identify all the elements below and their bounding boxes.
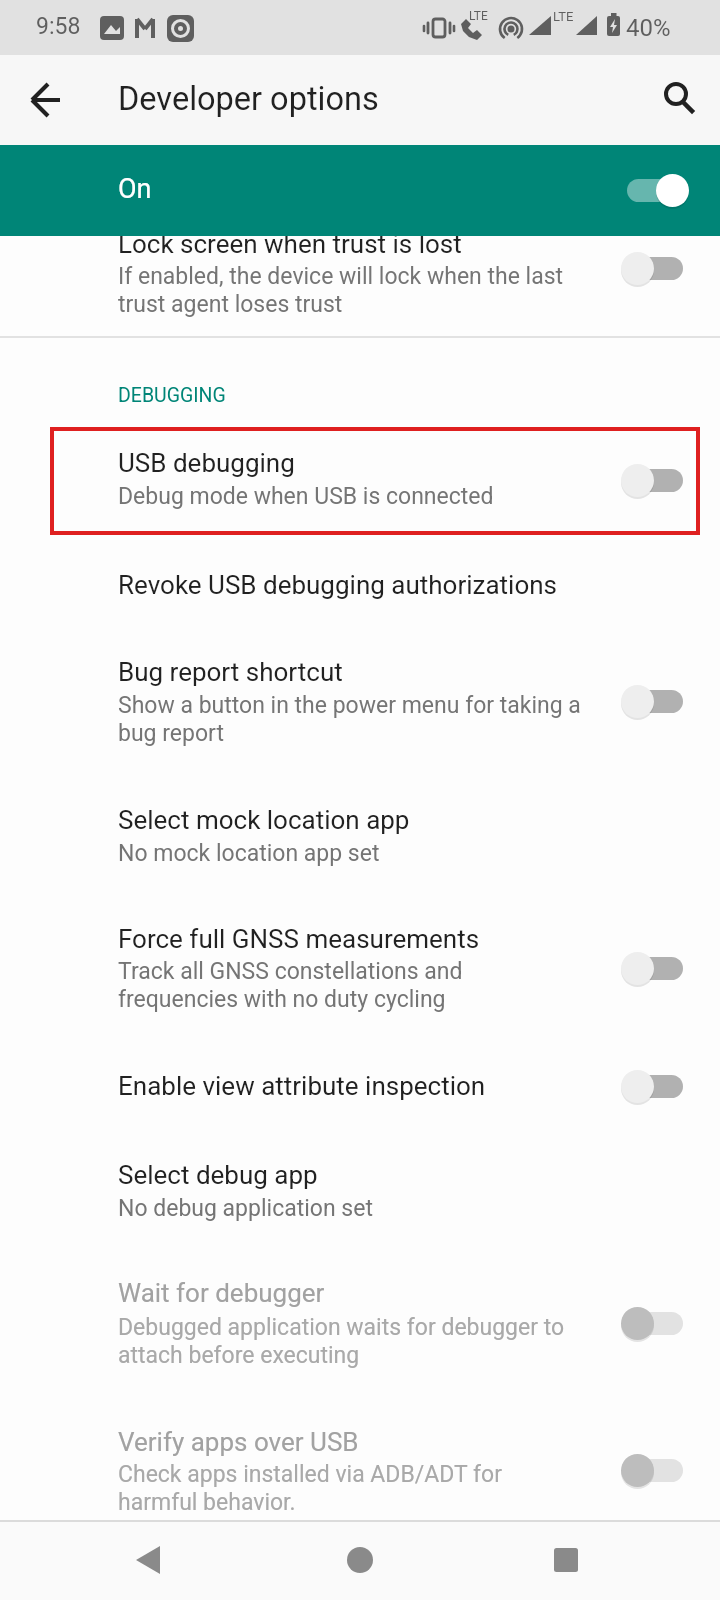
staticText: Debugged application waits for debugger … <box>118 1314 565 1368</box>
button[interactable] <box>656 80 696 120</box>
button[interactable] <box>621 951 689 985</box>
staticText: LTE <box>469 9 488 23</box>
button[interactable] <box>621 463 689 497</box>
button[interactable]: Select mock location app <box>118 805 410 835</box>
button[interactable]: On <box>0 145 720 236</box>
staticText: No mock location app set <box>118 840 380 867</box>
staticText: DEBUGGING <box>118 384 226 407</box>
button[interactable] <box>128 1540 168 1580</box>
staticText: Bug report shortcut <box>118 657 343 687</box>
button[interactable] <box>621 684 689 718</box>
button[interactable] <box>621 1069 689 1103</box>
staticText: Track all GNSS constellations and freque… <box>118 958 463 1012</box>
staticText: On <box>118 173 152 205</box>
button[interactable] <box>621 1306 689 1340</box>
staticText: Show a button in the power menu for taki… <box>118 692 581 746</box>
staticText: Wait for debugger <box>118 1278 325 1308</box>
staticText: Force full GNSS measurements <box>118 924 480 954</box>
button[interactable] <box>546 1540 586 1580</box>
staticText: No debug application set <box>118 1195 373 1222</box>
staticText: Developer options <box>118 80 379 118</box>
staticText: Select debug app <box>118 1160 318 1190</box>
staticText: LTE <box>553 9 574 24</box>
staticText: Select mock location app <box>118 805 410 835</box>
button[interactable] <box>621 1453 689 1487</box>
staticText: Lock screen when trust is lost <box>118 229 462 259</box>
staticText: 40% <box>626 14 671 42</box>
button[interactable] <box>621 173 689 207</box>
staticText: Debug mode when USB is connected <box>118 483 494 510</box>
staticText: Verify apps over USB <box>118 1427 359 1457</box>
staticText: 9:58 <box>36 13 81 40</box>
staticText: USB debugging <box>118 448 295 478</box>
staticText: Check apps installed via ADB/ADT for har… <box>118 1461 502 1515</box>
button[interactable] <box>621 251 689 285</box>
staticText: If enabled, the device will lock when th… <box>118 263 564 317</box>
button[interactable] <box>340 1540 380 1580</box>
button[interactable] <box>0 55 70 145</box>
staticText: Enable view attribute inspection <box>118 1071 486 1101</box>
staticText: Revoke USB debugging authorizations <box>118 570 558 600</box>
button[interactable]: Select debug app <box>118 1160 318 1190</box>
button[interactable]: Revoke USB debugging authorizations <box>118 570 558 600</box>
